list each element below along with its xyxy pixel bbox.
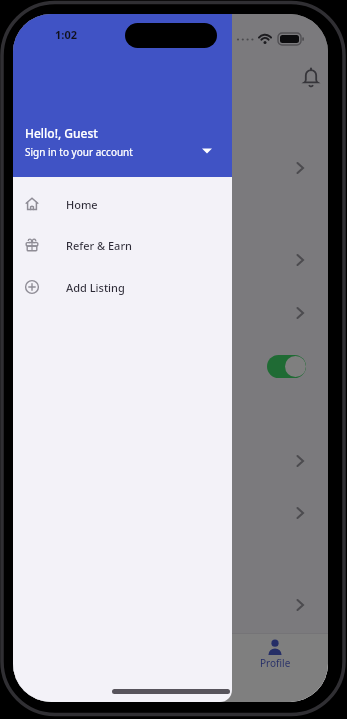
staticText: Profile [260,656,291,670]
button[interactable] [267,355,306,378]
button[interactable]: Add Listing [13,273,232,301]
button[interactable]: Profile [253,639,297,685]
button[interactable]: Hello!, Guest [13,114,232,174]
staticText: Home [66,197,98,212]
button[interactable]: Refer & Earn [13,231,232,259]
staticText: 1:02 [55,27,77,42]
staticText: Add Listing [66,280,125,295]
button[interactable] [13,14,328,702]
staticText: Hello!, Guest [25,125,98,141]
staticText: Sign in to your account [25,145,133,159]
button[interactable]: Home [13,190,232,218]
staticText: Refer & Earn [66,238,132,253]
button[interactable] [303,67,323,91]
